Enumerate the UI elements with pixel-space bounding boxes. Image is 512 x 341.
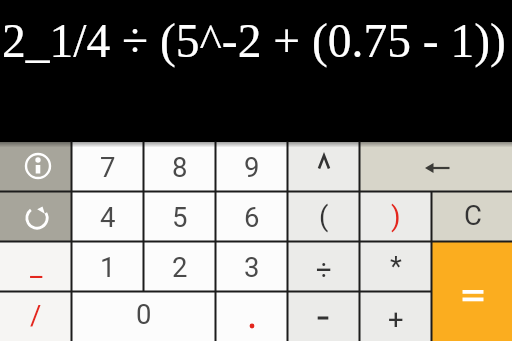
staticText: 9 <box>244 151 260 183</box>
staticText: 5 <box>172 201 188 233</box>
button[interactable] <box>0 142 72 192</box>
button[interactable]: * <box>360 242 432 292</box>
button[interactable] <box>288 142 360 192</box>
button[interactable]: 2 <box>144 242 216 292</box>
staticText: 6 <box>244 201 260 233</box>
button[interactable]: 5 <box>144 192 216 242</box>
staticText: 3 <box>244 251 260 283</box>
staticText: 0 <box>136 298 152 330</box>
button[interactable] <box>288 292 360 341</box>
button[interactable]: 8 <box>144 142 216 192</box>
button[interactable]: 4 <box>72 192 144 242</box>
button[interactable] <box>0 192 72 242</box>
staticText: 7 <box>100 151 116 183</box>
button[interactable]: ( <box>288 192 360 242</box>
button[interactable]: 9 <box>216 142 288 192</box>
staticText: ( <box>319 200 329 232</box>
button[interactable]: 7 <box>72 142 144 192</box>
staticText: ) <box>391 200 401 232</box>
button[interactable] <box>432 242 512 341</box>
staticText: 1 <box>100 251 116 283</box>
staticText: * <box>390 250 402 282</box>
button[interactable]: + <box>360 292 432 341</box>
staticText: 2_1/4 ÷ (5^-2 + (0.75 - 1)) <box>2 15 506 68</box>
staticText: _ <box>30 250 43 282</box>
staticText: 4 <box>100 201 116 233</box>
button[interactable]: ÷ <box>288 242 360 292</box>
button[interactable]: 1 <box>72 242 144 292</box>
button[interactable]: 0 <box>72 292 216 341</box>
button[interactable]: C <box>432 192 512 242</box>
button[interactable]: ) <box>360 192 432 242</box>
button[interactable] <box>216 292 288 341</box>
button[interactable]: / <box>0 292 72 341</box>
staticText: / <box>30 299 42 331</box>
staticText: 2 <box>172 251 188 283</box>
staticText: 8 <box>172 151 188 183</box>
staticText: C <box>464 199 482 231</box>
button[interactable] <box>360 142 512 192</box>
staticText: + <box>388 303 404 335</box>
button[interactable]: 3 <box>216 242 288 292</box>
button[interactable]: _ <box>0 242 72 292</box>
button[interactable]: 6 <box>216 192 288 242</box>
staticText: ÷ <box>316 253 332 285</box>
